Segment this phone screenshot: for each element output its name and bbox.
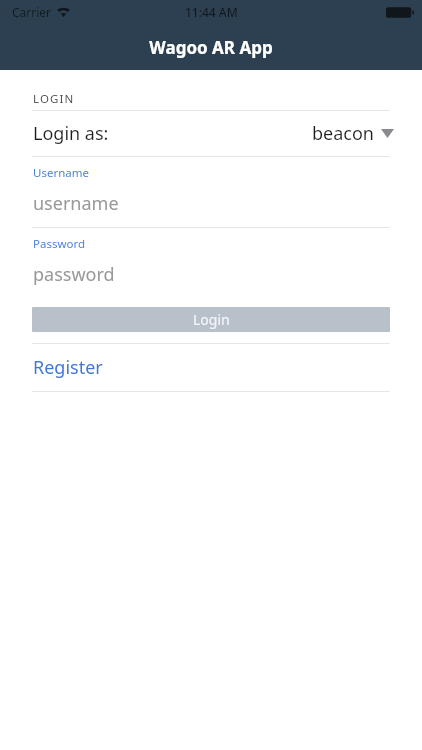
staticText: Carrier [12,4,52,20]
staticText: beacon [312,121,374,146]
button[interactable]: Login [32,307,390,332]
button[interactable]: Username [0,157,422,227]
staticText: Password [33,236,86,252]
button[interactable]: Login as: [0,111,422,156]
staticText: Wagoo AR App [149,36,273,59]
staticText: Login as: [33,121,109,146]
staticText: Login [193,310,230,329]
button[interactable]: Register [0,344,422,391]
staticText: 11:44 AM [185,4,238,20]
button[interactable]: Password [0,228,422,298]
staticText: Register [33,355,103,380]
staticText: Username [33,165,89,181]
staticText: password [33,262,115,287]
staticText: username [33,191,119,216]
staticText: LOGIN [33,91,75,107]
other: Select login role [381,129,394,138]
